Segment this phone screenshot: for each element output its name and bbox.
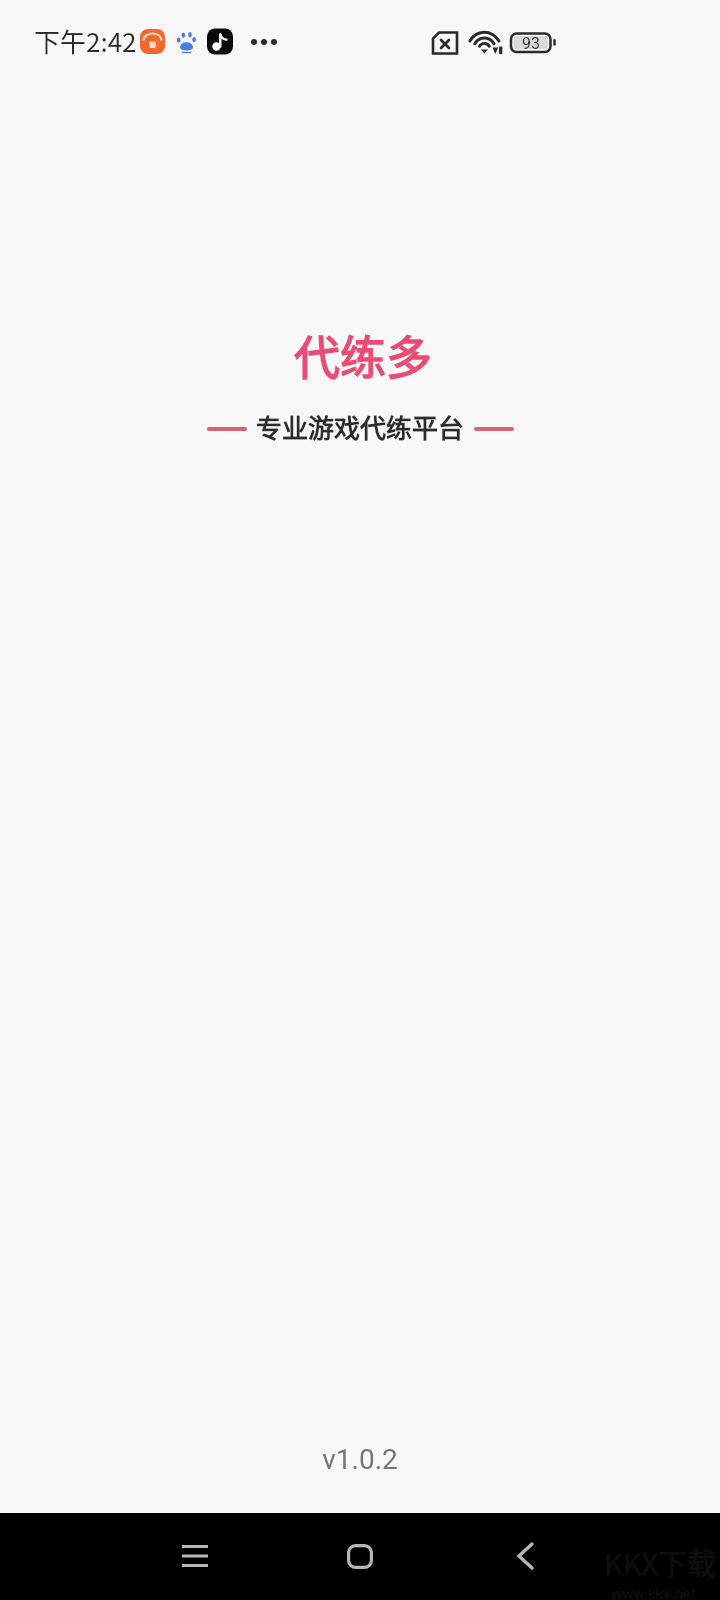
staticText: 93 [522,34,540,53]
staticText: 代练多 [294,321,432,388]
staticText: KKX下载 [604,1541,717,1583]
button[interactable]: Recent apps [155,1516,235,1596]
button[interactable]: 代练多 [0,323,720,446]
staticText: 专业游戏代练平台 [256,408,465,446]
staticText: 下午2:42 [34,22,137,60]
staticText: v1.0.2 [322,1443,398,1476]
button[interactable]: Back [485,1516,565,1596]
button[interactable]: Home [320,1516,400,1596]
staticText: www.kkx.net [611,1585,696,1600]
